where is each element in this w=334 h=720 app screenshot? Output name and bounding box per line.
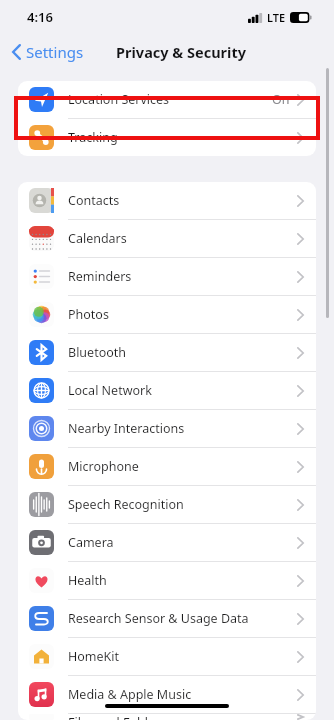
staticText: Nearby Interactions <box>68 420 185 437</box>
button[interactable]: Files and Folders <box>18 714 316 720</box>
staticText: Contacts <box>68 192 120 209</box>
button[interactable]: Settings <box>8 38 88 66</box>
staticText: Bluetooth <box>68 344 127 361</box>
button[interactable]: Contacts <box>18 182 316 220</box>
button[interactable]: Local Network <box>18 372 316 410</box>
button[interactable]: Nearby Interactions <box>18 410 316 448</box>
staticText: Settings <box>26 42 84 62</box>
staticText: 4:16 <box>27 8 53 26</box>
button[interactable]: Tracking <box>18 119 316 156</box>
button[interactable]: Speech Recognition <box>18 486 316 524</box>
staticText: Location Services <box>68 91 170 108</box>
staticText: Speech Recognition <box>68 496 184 513</box>
staticText: Tracking <box>68 129 118 146</box>
staticText: Research Sensor & Usage Data <box>68 610 249 627</box>
staticText: LTE <box>267 10 286 25</box>
staticText: Health <box>68 572 107 589</box>
staticText: Microphone <box>68 458 139 475</box>
button[interactable]: Research Sensor & Usage Data <box>18 600 316 638</box>
staticText: HomeKit <box>68 648 120 665</box>
button[interactable]: Reminders <box>18 258 316 296</box>
staticText: Files and Folders <box>68 714 167 720</box>
staticText: Camera <box>68 534 114 551</box>
button[interactable]: Bluetooth <box>18 334 316 372</box>
staticText: Photos <box>68 306 109 323</box>
staticText: Media & Apple Music <box>68 686 192 703</box>
staticText: Calendars <box>68 230 127 247</box>
staticText: Local Network <box>68 382 152 399</box>
button[interactable]: HomeKit <box>18 638 316 676</box>
button[interactable]: Health <box>18 562 316 600</box>
staticText: On <box>272 91 290 108</box>
button[interactable]: Calendars <box>18 220 316 258</box>
button[interactable]: Location Services <box>18 81 316 119</box>
button[interactable]: Microphone <box>18 448 316 486</box>
button[interactable]: Camera <box>18 524 316 562</box>
button[interactable]: Media & Apple Music <box>18 676 316 714</box>
staticText: Privacy & Security <box>116 42 246 62</box>
button[interactable]: Photos <box>18 296 316 334</box>
staticText: Reminders <box>68 268 132 285</box>
